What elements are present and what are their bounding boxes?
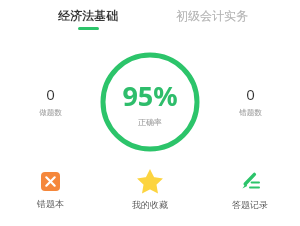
staticText: 正确率 [138,117,162,127]
button[interactable]: 95% [100,52,200,152]
button[interactable]: 错题本 [0,168,100,213]
staticText: 答题记录 [232,199,268,210]
button[interactable]: 初级会计实务 [150,6,274,32]
staticText: 错题本 [37,198,64,209]
button[interactable]: 0 [200,82,300,119]
staticText: 错题数 [239,108,262,117]
button[interactable]: 我的收藏 [100,168,200,214]
staticText: 0 [46,84,55,104]
button[interactable]: 0 [0,82,100,119]
button[interactable]: 答题记录 [200,168,300,214]
staticText: 初级会计实务 [176,8,248,23]
staticText: 95% [122,77,178,114]
staticText: 经济法基础 [58,8,118,23]
staticText: 0 [246,84,255,104]
staticText: 做题数 [39,108,62,117]
button[interactable]: 经济法基础 [26,6,150,32]
staticText: 我的收藏 [132,199,168,210]
